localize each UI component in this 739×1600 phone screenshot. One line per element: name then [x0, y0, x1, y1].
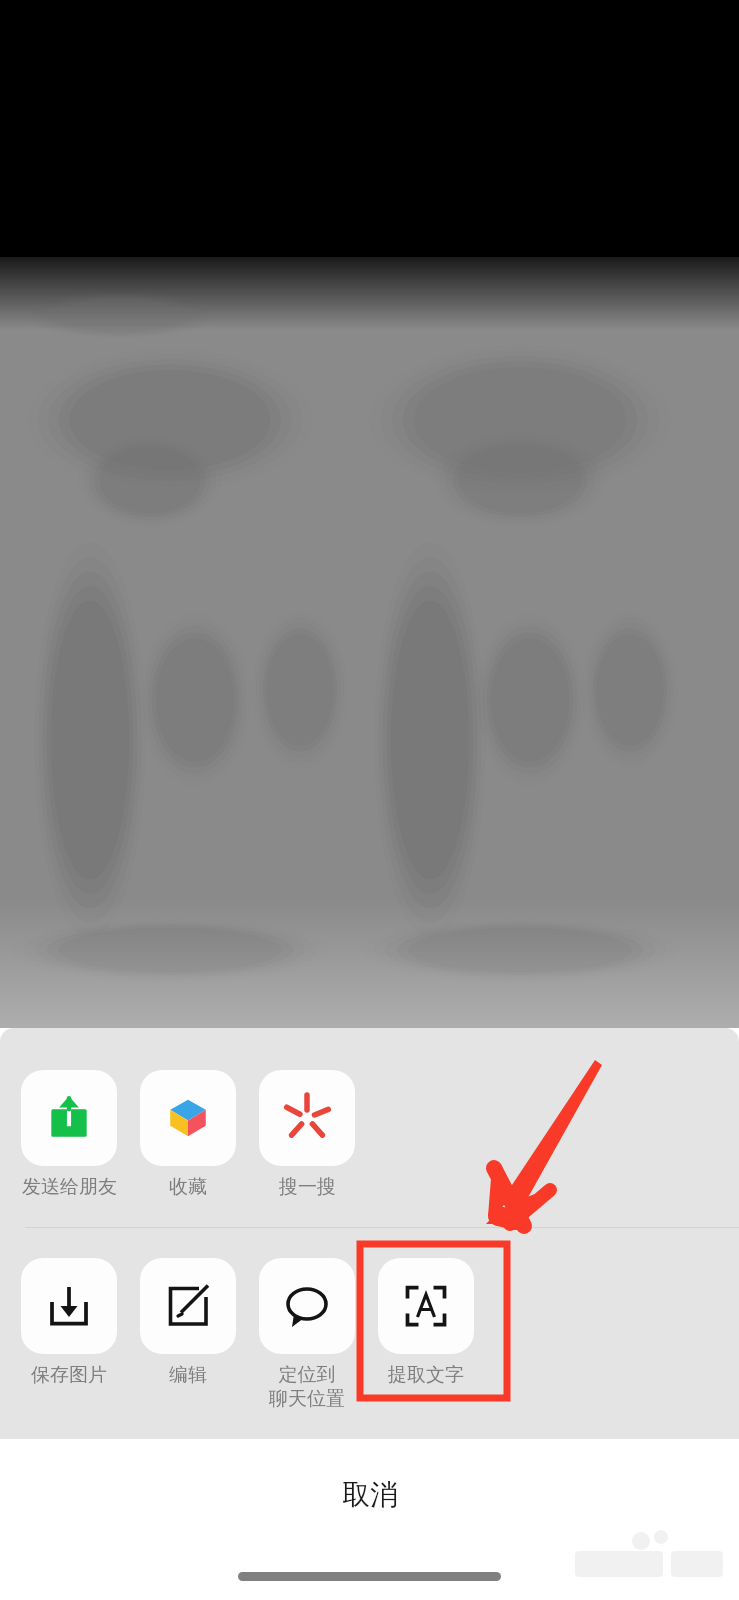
- staticText: 保存图片: [31, 1363, 107, 1387]
- button[interactable]: 收藏: [140, 1070, 236, 1199]
- staticText: 取消: [342, 1477, 398, 1512]
- button[interactable]: 编辑: [140, 1258, 236, 1387]
- other: 提取文字: [401, 1281, 451, 1331]
- staticText: 搜一搜: [279, 1175, 336, 1199]
- button[interactable]: 取消: [0, 1439, 739, 1600]
- other: 收藏: [164, 1094, 212, 1142]
- other: 发送给朋友: [43, 1092, 95, 1144]
- other: 保存图片: [44, 1281, 94, 1331]
- button[interactable]: 定位到聊天位置: [259, 1258, 355, 1411]
- staticText: 编辑: [169, 1363, 207, 1387]
- staticText: 定位到 聊天位置: [269, 1363, 345, 1411]
- staticText: 收藏: [169, 1175, 207, 1199]
- button[interactable]: 提取文字: [378, 1258, 474, 1387]
- other: 编辑: [163, 1281, 213, 1331]
- button[interactable]: 发送给朋友: [21, 1070, 117, 1199]
- staticText: 发送给朋友: [22, 1175, 117, 1199]
- other: 搜一搜: [282, 1093, 332, 1143]
- button[interactable]: 保存图片: [21, 1258, 117, 1387]
- staticText: 提取文字: [388, 1363, 464, 1387]
- button[interactable]: 搜一搜: [259, 1070, 355, 1199]
- other: 定位到聊天位置: [282, 1281, 332, 1331]
